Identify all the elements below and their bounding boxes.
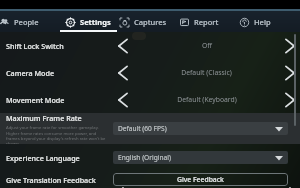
button[interactable]: People <box>0 11 39 32</box>
staticText: Default (Classic) <box>181 68 232 77</box>
button[interactable]: Experience Language <box>0 144 300 171</box>
staticText: People <box>14 17 39 27</box>
button[interactable]: Next Camera Mode <box>280 62 300 84</box>
staticText: Report <box>194 17 219 27</box>
staticText: Maximum Frame Rate <box>6 113 82 123</box>
button[interactable]: Previous Camera Mode <box>113 62 133 84</box>
staticText: Camera Mode <box>6 68 55 78</box>
button[interactable]: English (Original) <box>118 151 283 164</box>
button[interactable]: Next Movement Mode <box>280 89 300 111</box>
staticText: Give Feedback <box>177 175 224 184</box>
button[interactable]: Help <box>240 11 271 32</box>
staticText: Default (60 FPS) <box>118 124 275 133</box>
button[interactable]: Shift Lock Switch <box>0 32 300 59</box>
staticText: Settings <box>80 17 111 27</box>
staticText: Off <box>202 41 212 50</box>
button[interactable]: Default (60 FPS) <box>118 122 283 135</box>
button[interactable]: Settings <box>60 11 117 32</box>
button[interactable]: Movement Mode <box>0 86 300 113</box>
button[interactable]: Previous Shift Lock Switch <box>113 35 133 57</box>
button[interactable]: Camera Mode <box>0 59 300 86</box>
staticText: Shift Lock Switch <box>6 41 64 51</box>
button[interactable]: Next Shift Lock Switch <box>280 35 300 57</box>
staticText: Captures <box>134 17 167 27</box>
staticText: English (Original) <box>118 153 275 162</box>
button[interactable]: Report <box>180 11 219 32</box>
button[interactable]: Previous Movement Mode <box>113 89 133 111</box>
staticText: Give Translation Feedback <box>6 175 96 185</box>
staticText: Movement Mode <box>6 95 65 105</box>
staticText: Help <box>254 17 271 27</box>
button[interactable]: Give Feedback <box>113 173 288 186</box>
staticText: Default (Keyboard) <box>177 95 237 104</box>
staticText: Adjust your frame rate for smoother game… <box>6 125 109 144</box>
button[interactable]: Maximum Frame Rate <box>0 113 300 144</box>
button[interactable]: Captures <box>120 11 167 32</box>
staticText: Experience Language <box>6 153 80 163</box>
